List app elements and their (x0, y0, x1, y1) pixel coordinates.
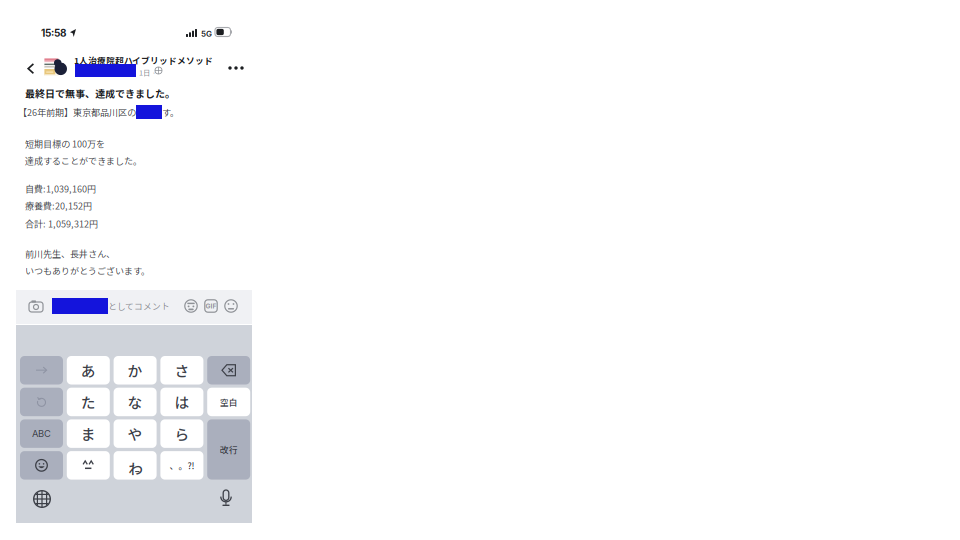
button[interactable]: Dictation (212, 485, 240, 512)
button[interactable]: ら (160, 419, 203, 448)
button[interactable]: Switch keyboard (26, 485, 58, 513)
button[interactable] (207, 356, 250, 384)
staticText: 1日 · (139, 67, 156, 78)
button[interactable]: Emoji (221, 296, 241, 316)
staticText: た (81, 391, 96, 412)
button[interactable]: More options (223, 58, 249, 78)
button[interactable]: な (114, 388, 157, 416)
staticText: 前川先生、長井さん、 (25, 247, 115, 260)
staticText: としてコメント (108, 300, 170, 312)
button[interactable]: GIF (201, 296, 221, 316)
staticText: 改行 (220, 443, 238, 456)
button[interactable]: 空白 (207, 388, 250, 416)
staticText: 5G (201, 29, 212, 39)
staticText: 、。?! (169, 459, 194, 472)
staticText: す。 (162, 105, 179, 118)
staticText: か (128, 360, 143, 381)
button[interactable]: や (114, 419, 157, 448)
staticText: 合計: 1,059,312円 (25, 217, 98, 230)
staticText: GIF (205, 302, 216, 310)
staticText: 達成することができました。 (25, 154, 142, 167)
staticText: 1人治療院超ハイブリッドメソッド (74, 54, 213, 66)
staticText: 15:58 (41, 27, 67, 39)
button[interactable] (20, 356, 63, 384)
button[interactable] (20, 451, 63, 480)
button[interactable]: さ (160, 356, 203, 384)
button[interactable] (67, 451, 110, 480)
staticText: わ (129, 458, 144, 479)
button[interactable]: は (160, 388, 203, 416)
button[interactable]: た (67, 388, 110, 416)
staticText: 最終日で無事、達成できました。 (25, 86, 175, 100)
staticText: は (174, 391, 189, 412)
staticText: 療養費:20,152円 (25, 199, 92, 212)
button[interactable]: か (114, 356, 157, 384)
button[interactable]: としてコメント (52, 290, 170, 322)
button[interactable]: Add photo (24, 290, 48, 322)
staticText: あ (81, 360, 96, 381)
staticText: ま (81, 423, 96, 444)
button[interactable]: 改行 (207, 419, 250, 480)
button[interactable] (20, 388, 63, 416)
staticText: な (128, 391, 143, 412)
staticText: さ (174, 360, 189, 381)
button[interactable]: ま (67, 419, 110, 448)
button[interactable]: あ (67, 356, 110, 384)
staticText: や (128, 423, 143, 444)
staticText: ら (174, 423, 189, 444)
button[interactable]: 、。?! (160, 451, 203, 480)
staticText: いつもありがとうございます。 (25, 264, 150, 277)
button[interactable]: Back (21, 55, 41, 83)
staticText: ABC (32, 428, 51, 439)
staticText: 短期目標の 100万を (25, 137, 105, 150)
staticText: 自費:1,039,160円 (25, 182, 96, 195)
button[interactable]: わ (114, 451, 157, 480)
button[interactable]: Avatar sticker (181, 296, 201, 316)
staticText: 空白 (220, 396, 238, 408)
button[interactable]: ABC (20, 419, 63, 448)
staticText: 【26年前期】東京都品川区の (18, 105, 136, 118)
